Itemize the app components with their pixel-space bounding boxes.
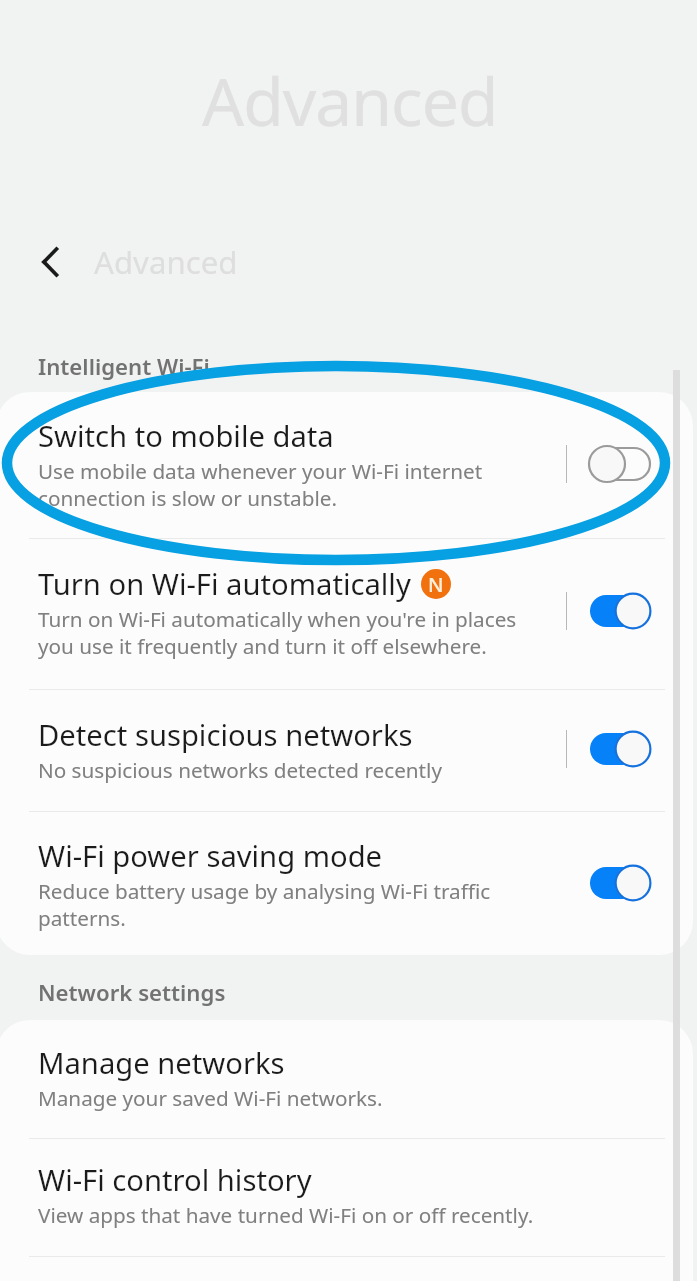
button[interactable]: Detect suspicious networks bbox=[0, 689, 693, 811]
button[interactable]: Turn on Wi-Fi automatically, on bbox=[590, 590, 654, 632]
staticText: No suspicious networks detected recently bbox=[38, 756, 442, 784]
button[interactable]: Turn on Wi-Fi automatically bbox=[0, 538, 693, 689]
button[interactable]: Wi-Fi power saving mode, on bbox=[590, 862, 654, 904]
button[interactable]: Switch to mobile data, off bbox=[590, 443, 654, 485]
button[interactable]: Switch to mobile data bbox=[0, 392, 693, 538]
staticText: Turn on Wi-Fi automatically when you're … bbox=[38, 605, 517, 660]
button[interactable]: Wi-Fi control history bbox=[0, 1138, 693, 1256]
staticText: View apps that have turned Wi-Fi on or o… bbox=[38, 1201, 534, 1229]
staticText: Use mobile data whenever your Wi-Fi inte… bbox=[38, 457, 483, 512]
staticText: Reduce battery usage by analysing Wi-Fi … bbox=[38, 877, 491, 932]
button[interactable]: Wi-Fi power saving mode bbox=[0, 811, 693, 955]
button[interactable]: Manage networks bbox=[0, 1020, 693, 1138]
staticText: Switch to mobile data bbox=[38, 416, 334, 456]
staticText: N bbox=[428, 571, 444, 598]
staticText: Manage your saved Wi-Fi networks. bbox=[38, 1084, 383, 1112]
staticText: Turn on Wi-Fi automatically bbox=[38, 564, 411, 604]
staticText: Manage networks bbox=[38, 1043, 285, 1083]
button[interactable]: Navigate up bbox=[23, 235, 77, 289]
staticText: Wi-Fi control history bbox=[38, 1160, 312, 1200]
staticText: Detect suspicious networks bbox=[38, 715, 413, 755]
staticText: Wi-Fi power saving mode bbox=[38, 836, 383, 876]
staticText: Intelligent Wi-Fi bbox=[38, 351, 210, 381]
staticText: Advanced bbox=[94, 241, 238, 283]
staticText: Advanced bbox=[202, 55, 498, 145]
staticText: Network settings bbox=[38, 977, 226, 1007]
button[interactable]: Detect suspicious networks, on bbox=[590, 728, 654, 770]
